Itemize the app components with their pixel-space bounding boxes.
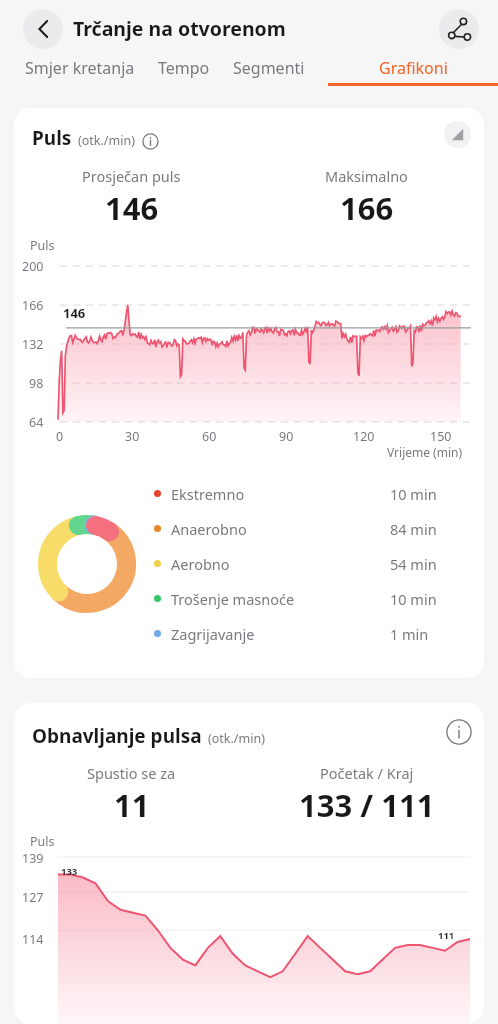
staticText: 84 min [390, 519, 462, 539]
staticText: 64 [29, 414, 44, 431]
button[interactable]: Grafikoni [328, 57, 498, 86]
button[interactable]: Aerobno [154, 546, 462, 581]
button[interactable]: Anaerobno [154, 511, 462, 546]
staticText: (otk./min) [78, 132, 135, 149]
button[interactable]: Ekstremno [154, 476, 462, 511]
staticText: 1 min [390, 624, 462, 644]
staticText: 11 [114, 784, 150, 826]
staticText: Prosječan puls [82, 166, 181, 186]
staticText: Spustio se za [87, 763, 176, 783]
staticText: Ekstremno [171, 484, 390, 504]
staticText: 166 [22, 297, 44, 314]
staticText: 60 [202, 428, 217, 445]
staticText: 90 [279, 428, 294, 445]
button[interactable]: Back [23, 9, 63, 49]
staticText: 166 [340, 187, 394, 229]
staticText: 120 [353, 428, 375, 445]
staticText: 111 [438, 929, 455, 942]
staticText: Vrijeme (min) [387, 444, 463, 460]
staticText: Početak / Kraj [320, 763, 414, 783]
staticText: 10 min [390, 484, 462, 504]
staticText: Trošenje masnoće [171, 589, 390, 609]
staticText: (otk./min) [208, 730, 265, 747]
staticText: 150 [430, 428, 452, 445]
staticText: Puls [30, 237, 55, 254]
staticText: Trčanje na otvorenom [73, 15, 286, 42]
staticText: 127 [22, 889, 44, 906]
staticText: Aerobno [171, 554, 390, 574]
staticText: 146 [63, 304, 86, 322]
staticText: 132 [22, 336, 44, 353]
staticText: 0 [56, 428, 64, 445]
staticText: Puls [30, 833, 55, 850]
staticText: 133 [61, 865, 78, 878]
staticText: 30 [125, 428, 140, 445]
staticText: Obnavljanje pulsa [32, 723, 202, 749]
button[interactable]: Expand chart [444, 121, 471, 148]
button[interactable]: Info about pulse recovery [446, 719, 472, 745]
staticText: 200 [22, 258, 44, 275]
button[interactable]: Trošenje masnoće [154, 581, 462, 616]
staticText: Grafikoni [379, 57, 448, 79]
staticText: Puls [32, 125, 72, 151]
button[interactable]: Smjer kretanja [25, 57, 135, 79]
button[interactable]: Segmenti [233, 57, 305, 79]
button[interactable]: Share [439, 9, 479, 49]
staticText: 146 [105, 187, 159, 229]
staticText: 98 [29, 375, 44, 392]
staticText: 114 [22, 931, 44, 948]
staticText: Tempo [158, 57, 210, 79]
staticText: 54 min [390, 554, 462, 574]
staticText: 10 min [390, 589, 462, 609]
button[interactable]: Zagrijavanje [154, 616, 462, 651]
button[interactable]: Tempo [158, 57, 210, 79]
staticText: Maksimalno [325, 166, 408, 186]
staticText: Anaerobno [171, 519, 390, 539]
staticText: Smjer kretanja [25, 57, 135, 79]
button[interactable]: Info about pulse [142, 133, 159, 150]
staticText: 139 [22, 850, 44, 867]
staticText: Zagrijavanje [171, 624, 390, 644]
staticText: 133 / 111 [299, 784, 435, 826]
staticText: Segmenti [233, 57, 305, 79]
